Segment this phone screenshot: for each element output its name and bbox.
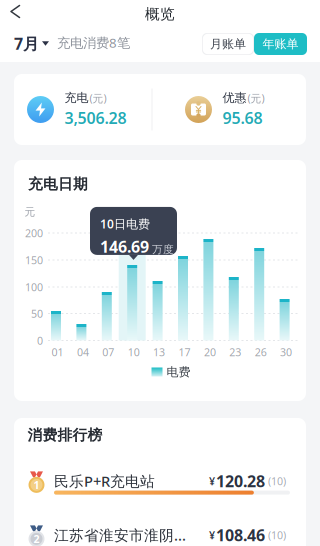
button[interactable]: 月账单	[202, 33, 254, 55]
staticText: 150	[25, 253, 43, 267]
staticText: 民乐P+R充电站	[54, 471, 155, 491]
staticText: 3,506.28	[64, 107, 126, 128]
staticText: (元)	[247, 91, 264, 105]
staticText: 元	[24, 205, 35, 218]
staticText: 充电	[64, 90, 88, 105]
staticText: 100	[25, 280, 43, 294]
button[interactable]	[0, 0, 19, 28]
staticText: 23	[229, 345, 241, 359]
button[interactable]: 2	[28, 519, 290, 546]
staticText: 04	[77, 345, 89, 359]
staticText: 01	[51, 345, 63, 359]
staticText: 年账单	[262, 37, 298, 51]
staticText: 消费排行榜	[27, 426, 102, 444]
staticText: (10)	[265, 474, 286, 488]
button[interactable]: 优惠	[14, 74, 167, 145]
staticText: 26	[255, 345, 267, 359]
staticText: 50	[31, 306, 43, 321]
staticText: 10日电费	[100, 216, 150, 232]
staticText: 200	[25, 226, 43, 240]
staticText: 0	[37, 333, 43, 348]
staticText: 江苏省淮安市淮阴...	[54, 525, 186, 545]
button[interactable]: 7月	[0, 34, 49, 56]
staticText: ¥	[209, 474, 215, 488]
staticText: 30	[280, 345, 292, 359]
staticText: 7月	[14, 33, 39, 54]
staticText: 优惠	[222, 90, 246, 105]
staticText: 概览	[145, 5, 175, 23]
staticText: 10	[128, 345, 140, 359]
staticText: 108.46	[216, 524, 265, 546]
staticText: 13	[153, 345, 165, 359]
button[interactable]: 充电	[14, 74, 152, 145]
staticText: 电费	[166, 365, 190, 379]
button[interactable]: 1	[28, 465, 290, 499]
staticText: (10)	[265, 528, 286, 542]
staticText: 月账单	[210, 37, 246, 51]
staticText: 2	[33, 532, 39, 546]
staticText: 17	[178, 345, 190, 359]
staticText: 146.69	[100, 236, 149, 257]
staticText: 1	[33, 478, 39, 492]
staticText: 07	[102, 345, 114, 359]
staticText: 20	[204, 345, 216, 359]
button[interactable]: 年账单	[254, 33, 307, 55]
staticText: (元)	[89, 91, 106, 105]
staticText: 万度	[152, 243, 174, 256]
staticText: 120.28	[216, 470, 265, 492]
staticText: ¥	[209, 528, 215, 542]
staticText: 充电消费8笔	[57, 34, 130, 51]
staticText: 充电日期	[28, 175, 88, 193]
staticText: 95.68	[222, 107, 262, 128]
